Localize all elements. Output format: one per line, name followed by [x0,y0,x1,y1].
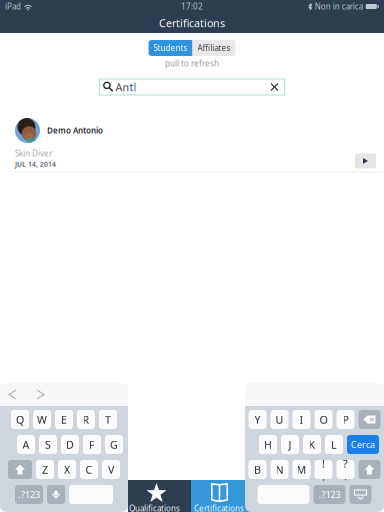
button[interactable]: X [58,460,76,479]
staticText: ? [343,457,348,471]
staticText: L [331,437,337,452]
button[interactable]: Certifications [191,480,254,512]
staticText: , [322,472,324,482]
button[interactable]: S [39,435,57,454]
staticText: A [22,437,29,452]
button[interactable]: Q [11,410,29,429]
button[interactable]: F [83,435,101,454]
button[interactable]: Y [248,410,266,429]
button[interactable]: Hide keyboard [349,485,371,504]
staticText: B [254,462,261,477]
button[interactable]: ? [336,460,354,479]
staticText: O [319,412,327,427]
button[interactable]: N [270,460,288,479]
button[interactable]: R [77,410,95,429]
button[interactable]: L [325,435,343,454]
staticText: X [64,462,70,477]
staticText: . [344,472,346,482]
staticText: Ant [115,80,133,94]
button[interactable] [257,485,309,504]
staticText: Y [254,412,260,427]
staticText: Certifications [159,16,225,30]
staticText: Z [42,462,48,477]
button[interactable]: Backspace [358,410,380,429]
staticText: Students [153,43,187,53]
staticText: .?123 [18,488,40,501]
button[interactable]: Affiliates [192,40,235,56]
staticText: M [296,462,306,477]
button[interactable]: M [292,460,310,479]
staticText: JUL 14, 2014 [15,160,56,168]
staticText: Affiliates [197,43,230,53]
button[interactable]: P [336,410,354,429]
staticText: J [288,437,291,452]
staticText: U [275,412,283,427]
staticText: Qualifications [129,503,180,512]
button[interactable]: ! [314,460,332,479]
staticText: Skin Diver [15,148,52,159]
button[interactable]: C [80,460,98,479]
staticText: R [82,412,89,427]
button[interactable]: Students [148,40,192,56]
staticText: Cerca [351,438,375,451]
staticText: 17:02 [181,1,203,12]
staticText: G [110,437,118,452]
staticText: C [85,462,92,477]
button[interactable]: O [314,410,332,429]
staticText: Non in carica [315,1,363,12]
button[interactable]: W [33,410,51,429]
button[interactable]: U [270,410,288,429]
button[interactable]: Open certification [355,153,376,168]
button[interactable]: .?123 [15,485,43,504]
staticText: ! [322,457,325,471]
button[interactable]: G [105,435,123,454]
staticText: K [308,437,315,452]
button[interactable]: Shift [8,460,32,479]
button[interactable]: I [292,410,310,429]
staticText: T [105,412,111,427]
button[interactable]: .?123 [313,485,345,504]
button[interactable]: Next field [34,387,47,401]
staticText: P [342,412,348,427]
button[interactable]: H [259,435,277,454]
button[interactable]: Clear search [267,79,281,95]
button[interactable]: V [102,460,120,479]
button[interactable]: Cerca [347,435,379,454]
staticText: pull to refresh [165,58,219,69]
staticText: D [66,437,74,452]
staticText: .?123 [318,488,340,501]
button[interactable] [69,485,113,504]
button[interactable]: D [61,435,79,454]
staticText: N [275,462,283,477]
button[interactable]: K [303,435,321,454]
staticText: I [299,412,303,427]
button[interactable]: Demo Antonio [0,118,384,172]
staticText: Certifications [194,503,244,512]
button[interactable]: J [281,435,299,454]
button[interactable]: T [99,410,117,429]
staticText: S [45,437,51,452]
staticText: iPad [5,1,21,12]
staticText: W [37,412,47,427]
button[interactable]: Z [36,460,54,479]
button[interactable]: Dictation [47,485,65,504]
button[interactable]: Shift [358,460,380,479]
button[interactable]: Previous field [6,387,19,401]
staticText: V [108,462,114,477]
staticText: E [61,412,67,427]
staticText: H [264,437,272,452]
staticText: Q [16,412,24,427]
button[interactable]: E [55,410,73,429]
button[interactable]: B [248,460,266,479]
button[interactable]: A [17,435,35,454]
staticText: Demo Antonio [47,125,103,136]
button[interactable]: Qualifications [128,480,191,512]
staticText: F [89,437,95,452]
